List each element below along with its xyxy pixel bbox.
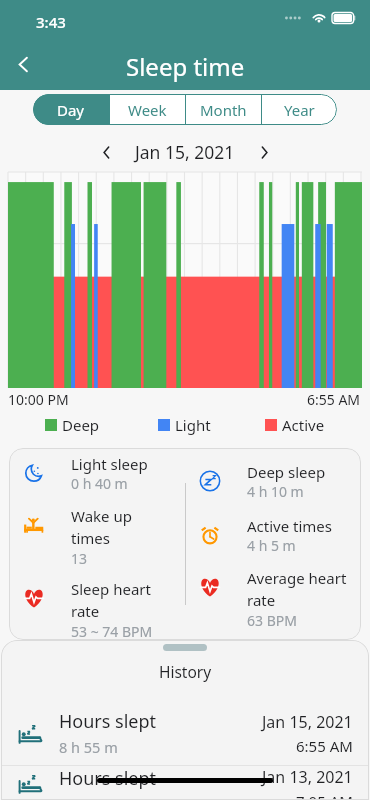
- staticText: Jan 13, 2021: [262, 766, 353, 788]
- staticText: 4 h 10 m: [247, 482, 304, 501]
- staticText: Sleep heart rate: [71, 579, 151, 622]
- staticText: 8 h 55 m: [59, 737, 118, 757]
- staticText: 6:55 AM: [307, 390, 361, 409]
- staticText: Active times: [247, 516, 333, 536]
- button[interactable]: Previous day: [93, 139, 119, 165]
- staticText: 8 h 12 m: [59, 794, 118, 800]
- button[interactable]: Hours slept: [1, 766, 369, 800]
- button[interactable]: Month: [186, 94, 261, 125]
- button[interactable]: Hours slept: [1, 701, 369, 765]
- button[interactable]: Light: [158, 415, 211, 435]
- staticText: 13: [71, 549, 88, 568]
- staticText: Average heart rate: [247, 568, 347, 611]
- button[interactable]: Day: [33, 94, 109, 125]
- staticText: Deep: [62, 415, 100, 435]
- staticText: Hours slept: [59, 766, 157, 791]
- staticText: Sleep time: [126, 50, 245, 83]
- staticText: Light sleep: [71, 454, 148, 474]
- staticText: 3:43: [36, 12, 66, 32]
- staticText: Week: [128, 100, 167, 120]
- staticText: Jan 15, 2021: [135, 140, 235, 164]
- button[interactable]: Active: [265, 415, 325, 435]
- staticText: Month: [200, 100, 247, 120]
- staticText: 63 BPM: [247, 611, 297, 630]
- staticText: 4 h 5 m: [247, 536, 296, 555]
- staticText: Year: [284, 100, 315, 120]
- button[interactable]: Back: [4, 45, 42, 83]
- staticText: Light: [175, 415, 211, 435]
- staticText: 53 ~ 74 BPM: [71, 622, 153, 640]
- staticText: 6:55 AM: [296, 736, 353, 756]
- staticText: Deep sleep: [247, 462, 326, 482]
- button[interactable]: Next day: [251, 139, 277, 165]
- staticText: 7:05 AM: [296, 791, 353, 800]
- button[interactable]: Week: [110, 94, 185, 125]
- staticText: 0 h 40 m: [71, 474, 128, 493]
- button[interactable]: Year: [262, 94, 337, 125]
- staticText: Day: [57, 100, 85, 120]
- staticText: 10:00 PM: [8, 390, 69, 409]
- button[interactable]: Deep: [45, 415, 100, 435]
- staticText: Jan 15, 2021: [262, 711, 353, 733]
- staticText: Active: [282, 415, 325, 435]
- staticText: Hours slept: [59, 709, 157, 734]
- staticText: Wake up times: [71, 506, 132, 549]
- staticText: History: [1, 661, 369, 682]
